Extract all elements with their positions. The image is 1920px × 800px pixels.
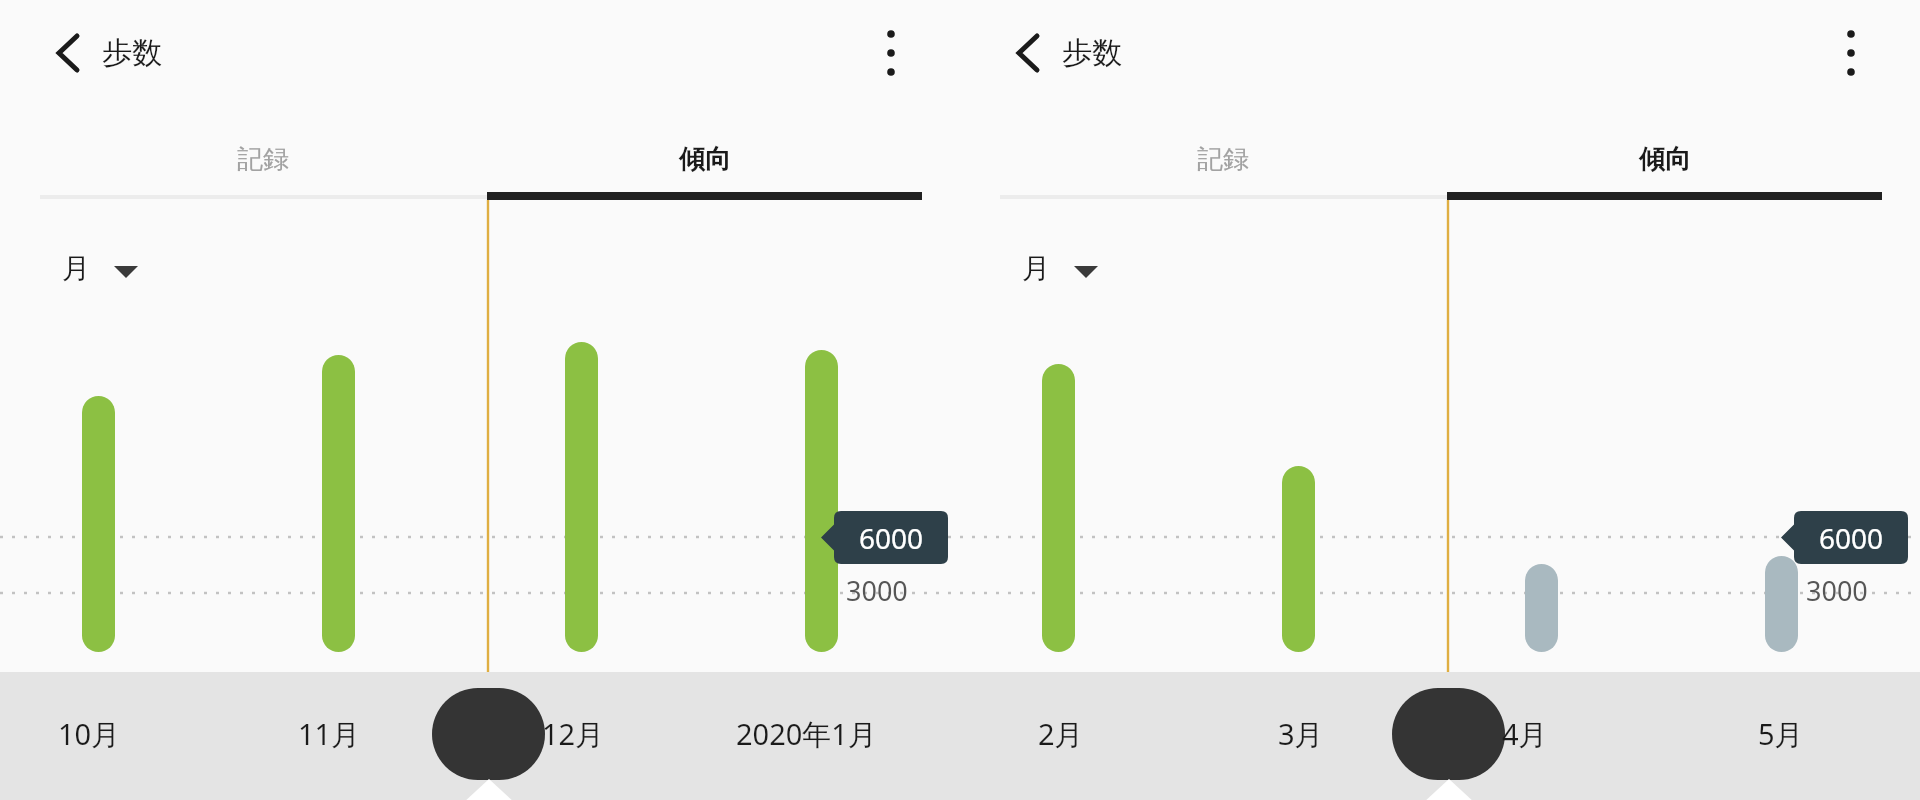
- staticText: 月: [1022, 251, 1050, 286]
- staticText: 4月: [1502, 714, 1548, 754]
- button[interactable]: 2020年1月: [736, 706, 936, 762]
- staticText: 歩数: [1062, 34, 1122, 72]
- staticText: 12月: [542, 714, 605, 754]
- staticText: 傾向: [679, 143, 731, 176]
- staticText: 5月: [1758, 714, 1804, 754]
- staticText: 歩数: [102, 34, 162, 72]
- staticText: 2月: [1038, 714, 1084, 754]
- staticText: 3月: [1278, 714, 1324, 754]
- staticText: 11月: [298, 714, 361, 754]
- button[interactable]: 12月: [542, 706, 662, 762]
- button[interactable]: Back: [28, 12, 108, 94]
- staticText: 記録: [1197, 143, 1249, 176]
- staticText: 6000: [859, 519, 924, 557]
- button[interactable]: 3月: [1278, 706, 1398, 762]
- button[interactable]: 4月: [1502, 706, 1622, 762]
- button[interactable]: 2月: [1038, 706, 1158, 762]
- button[interactable]: 傾向: [488, 122, 922, 196]
- button[interactable]: [432, 688, 545, 780]
- staticText: 3000: [1806, 572, 1868, 609]
- staticText: 記録: [237, 143, 289, 176]
- button[interactable]: 記録: [40, 122, 486, 196]
- staticText: 6000: [1819, 519, 1884, 557]
- staticText: 3000: [846, 572, 908, 609]
- button[interactable]: [1392, 688, 1505, 780]
- button[interactable]: 月: [1008, 234, 1138, 302]
- staticText: 傾向: [1639, 143, 1691, 176]
- staticText: 月: [62, 251, 90, 286]
- button[interactable]: 5月: [1758, 706, 1878, 762]
- button[interactable]: Back: [988, 12, 1068, 94]
- staticText: 2020年1月: [736, 714, 877, 754]
- button[interactable]: 11月: [298, 706, 418, 762]
- button[interactable]: More options: [852, 12, 930, 94]
- button[interactable]: 月: [48, 234, 178, 302]
- staticText: 10月: [58, 714, 121, 754]
- button[interactable]: 傾向: [1448, 122, 1882, 196]
- button[interactable]: More options: [1812, 12, 1890, 94]
- button[interactable]: 10月: [58, 706, 178, 762]
- button[interactable]: 記録: [1000, 122, 1446, 196]
